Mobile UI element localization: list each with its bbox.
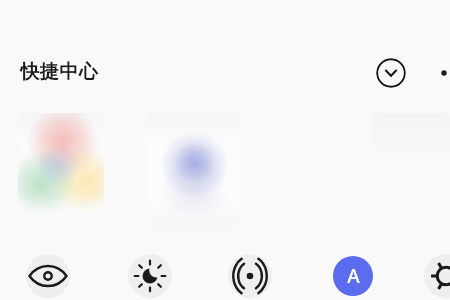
button[interactable]: Hotspot xyxy=(228,254,272,298)
button[interactable]: More options xyxy=(432,58,450,88)
button[interactable]: Expand xyxy=(376,58,406,88)
button[interactable] xyxy=(18,113,104,227)
button[interactable]: Dark mode xyxy=(128,254,172,298)
staticText: 快捷中心 xyxy=(20,60,98,84)
button[interactable] xyxy=(145,113,240,227)
staticText: A xyxy=(347,263,360,289)
button[interactable]: Auto brightness xyxy=(333,256,373,296)
button[interactable]: Eye comfort xyxy=(26,254,70,298)
button[interactable]: Settings xyxy=(424,254,450,298)
